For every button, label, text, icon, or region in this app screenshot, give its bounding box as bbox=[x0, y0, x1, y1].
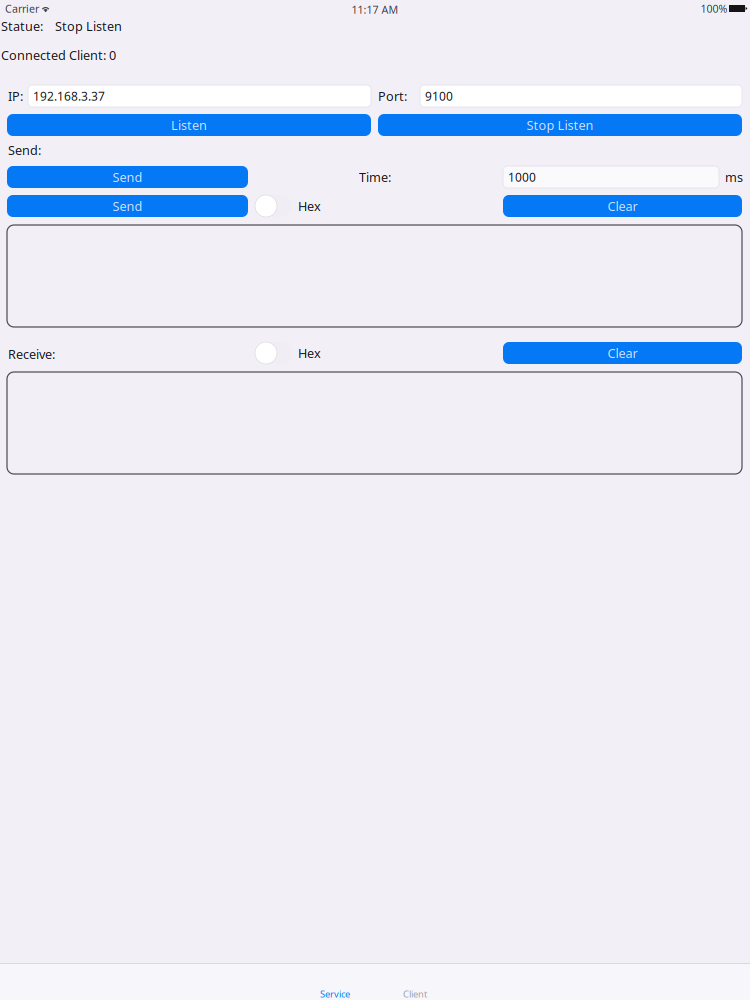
staticText: Clear bbox=[607, 197, 637, 215]
staticText: 100% bbox=[700, 1, 727, 16]
staticText: Stop Listen bbox=[526, 116, 593, 134]
button[interactable]: Client bbox=[370, 985, 460, 1000]
staticText: Hex bbox=[298, 344, 321, 362]
button[interactable]: Hex bbox=[255, 195, 315, 217]
staticText: IP: bbox=[8, 87, 23, 105]
button[interactable]: Port bbox=[420, 85, 742, 107]
staticText: Send bbox=[112, 168, 142, 186]
staticText: Statue: bbox=[1, 17, 43, 35]
staticText: Time: bbox=[359, 168, 391, 186]
staticText: Service bbox=[320, 988, 350, 1000]
button[interactable]: Listen bbox=[7, 114, 371, 136]
staticText: 11:17 AM bbox=[351, 2, 398, 17]
staticText: Clear bbox=[607, 344, 637, 362]
staticText: Carrier bbox=[5, 1, 39, 16]
staticText: 9100 bbox=[425, 88, 453, 104]
staticText: ms bbox=[725, 168, 743, 186]
staticText: Receive: bbox=[8, 345, 55, 363]
button[interactable]: Clear bbox=[503, 195, 742, 217]
button[interactable]: IP address bbox=[28, 85, 371, 107]
staticText: Send: bbox=[8, 141, 41, 159]
staticText: 192.168.3.37 bbox=[33, 88, 105, 104]
staticText: Stop Listen bbox=[55, 17, 122, 35]
staticText: Client bbox=[403, 988, 427, 1000]
staticText: 1000 bbox=[508, 169, 536, 185]
staticText: Listen bbox=[171, 116, 207, 134]
button[interactable]: Send bbox=[7, 195, 248, 217]
button[interactable]: Send bbox=[7, 166, 248, 188]
staticText: Connected Client: 0 bbox=[1, 46, 116, 64]
button[interactable]: Stop Listen bbox=[378, 114, 742, 136]
button[interactable]: Clear bbox=[503, 342, 742, 364]
staticText: Hex bbox=[298, 197, 321, 215]
staticText: Port: bbox=[378, 87, 407, 105]
button[interactable]: Service bbox=[290, 985, 380, 1000]
staticText: Send bbox=[112, 197, 142, 215]
button[interactable]: Time interval bbox=[503, 166, 719, 188]
button[interactable]: Hex bbox=[255, 342, 315, 364]
